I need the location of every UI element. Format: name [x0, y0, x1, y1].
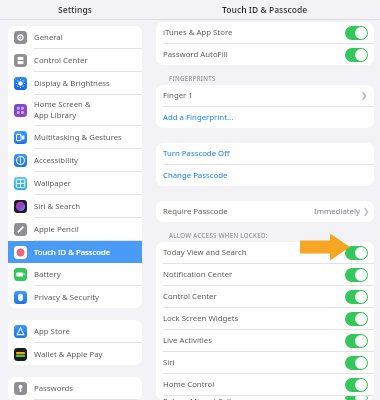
- button[interactable]: Control Center: [156, 286, 374, 307]
- button[interactable]: Return Missed Calls: [156, 396, 374, 400]
- button[interactable]: Wallet & Apple Pay: [8, 343, 142, 365]
- button[interactable]: Siri & Search: [8, 195, 142, 217]
- button[interactable]: Notification Center: [156, 264, 374, 285]
- staticText: Touch ID & Passcode: [34, 247, 111, 258]
- button[interactable]: Password AutoFill: [156, 44, 374, 65]
- button[interactable]: Add a Fingerprint...: [156, 107, 374, 128]
- staticText: Multitasking & Gestures: [34, 132, 122, 143]
- button[interactable]: Toggle: [345, 268, 368, 282]
- staticText: Home Control: [163, 379, 345, 390]
- staticText: Lock Screen Widgets: [163, 313, 345, 324]
- button[interactable]: Display & Brightness: [8, 72, 142, 94]
- button[interactable]: Live Activities: [156, 330, 374, 351]
- staticText: Display & Brightness: [34, 78, 110, 89]
- staticText: FINGERPRINTS: [169, 74, 216, 82]
- staticText: App Store: [34, 326, 70, 337]
- staticText: Siri & Search: [34, 201, 80, 212]
- button[interactable]: Toggle: [345, 48, 368, 62]
- button[interactable]: Toggle: [345, 356, 368, 370]
- staticText: Require Passcode: [163, 206, 314, 217]
- button[interactable]: Finger 1: [156, 85, 374, 106]
- staticText: Add a Fingerprint...: [163, 112, 368, 123]
- button[interactable]: Toggle: [345, 396, 368, 400]
- button[interactable]: Home Control: [156, 374, 374, 395]
- staticText: Privacy & Security: [34, 292, 100, 303]
- staticText: Change Passcode: [163, 170, 368, 181]
- button[interactable]: Toggle: [345, 378, 368, 392]
- button[interactable]: Wallpaper: [8, 172, 142, 194]
- button[interactable]: Multitasking & Gestures: [8, 126, 142, 148]
- staticText: Wallet & Apple Pay: [34, 349, 103, 360]
- staticText: Battery: [34, 269, 61, 280]
- button[interactable]: iTunes & App Store: [156, 22, 374, 43]
- button[interactable]: Control Center: [8, 49, 142, 71]
- staticText: Password AutoFill: [163, 49, 345, 60]
- staticText: Wallpaper: [34, 178, 72, 189]
- button[interactable]: Home Screen &: [8, 95, 142, 125]
- staticText: Live Activities: [163, 335, 345, 346]
- button[interactable]: Accessibility: [8, 149, 142, 171]
- staticText: Today View and Search: [163, 247, 345, 258]
- staticText: Control Center: [34, 55, 88, 66]
- staticText: Accessibility: [34, 155, 78, 166]
- button[interactable]: Toggle: [345, 246, 368, 260]
- staticText: Siri: [163, 357, 345, 368]
- button[interactable]: Toggle: [345, 290, 368, 304]
- staticText: Turn Passcode Off: [163, 148, 368, 159]
- button[interactable]: App Store: [8, 320, 142, 342]
- staticText: Return Missed Calls: [163, 396, 345, 400]
- staticText: Apple Pencil: [34, 224, 79, 235]
- button[interactable]: General: [8, 26, 142, 48]
- button[interactable]: Apple Pencil: [8, 218, 142, 240]
- staticText: General: [34, 32, 63, 43]
- staticText: Passwords: [34, 383, 73, 394]
- button[interactable]: Privacy & Security: [8, 286, 142, 308]
- staticText: Notification Center: [163, 269, 345, 280]
- button[interactable]: Toggle: [345, 312, 368, 326]
- button[interactable]: Touch ID & Passcode: [8, 241, 142, 263]
- button[interactable]: Battery: [8, 263, 142, 285]
- button[interactable]: Require Passcode: [156, 201, 374, 222]
- button[interactable]: Change Passcode: [156, 165, 374, 186]
- button[interactable]: Today View and Search: [156, 242, 374, 263]
- staticText: ALLOW ACCESS WHEN LOCKED:: [169, 231, 268, 239]
- staticText: Settings: [58, 4, 92, 16]
- staticText: Finger 1: [163, 90, 362, 101]
- button[interactable]: Turn Passcode Off: [156, 143, 374, 164]
- staticText: Immediately: [314, 206, 361, 217]
- button[interactable]: Siri: [156, 352, 374, 373]
- staticText: iTunes & App Store: [163, 27, 345, 38]
- button[interactable]: Passwords: [8, 377, 142, 399]
- button[interactable]: Lock Screen Widgets: [156, 308, 374, 329]
- staticText: App Library: [34, 110, 77, 121]
- staticText: Control Center: [163, 291, 345, 302]
- button[interactable]: Toggle: [345, 334, 368, 348]
- staticText: Touch ID & Passcode: [222, 4, 308, 16]
- button[interactable]: Toggle: [345, 26, 368, 40]
- staticText: Home Screen &: [34, 99, 91, 110]
